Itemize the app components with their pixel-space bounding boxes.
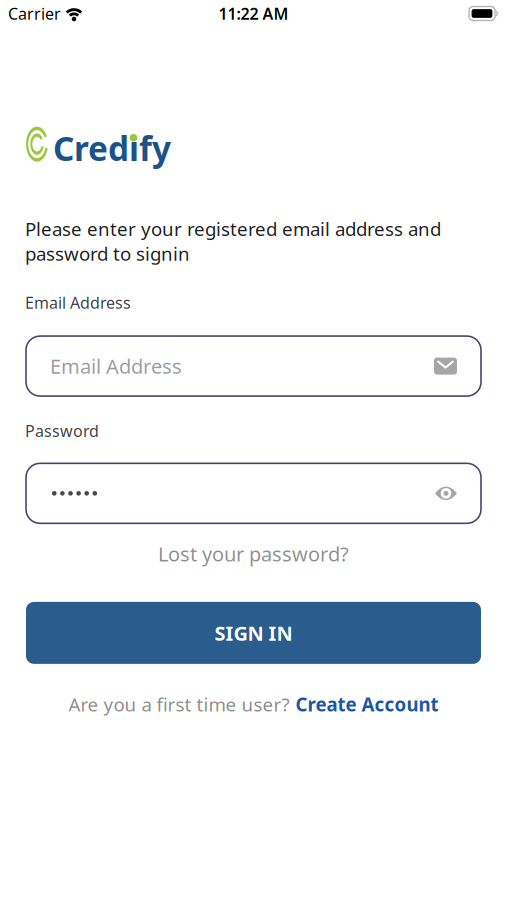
staticText: Create Account	[295, 692, 438, 717]
staticText: password to signin	[25, 241, 190, 266]
staticText: Are you a first time user?	[68, 692, 289, 717]
staticText: 11:22 AM	[218, 3, 288, 24]
staticText: Email Address	[50, 353, 182, 379]
staticText: Credify	[53, 126, 171, 170]
staticText: Carrier	[8, 3, 61, 24]
button[interactable]: Email Address	[26, 336, 481, 396]
staticText: Password	[25, 420, 99, 441]
staticText: Please enter your registered email addre…	[25, 216, 441, 241]
staticText: Email Address	[25, 292, 131, 313]
button[interactable]: Create Account	[295, 692, 438, 717]
button[interactable]: Password	[26, 463, 481, 523]
button[interactable]: SIGN IN	[26, 602, 481, 664]
button[interactable]: Show password	[435, 485, 457, 501]
staticText: Lost your password?	[158, 540, 349, 567]
staticText: SIGN IN	[214, 620, 292, 646]
button[interactable]: Lost your password?	[0, 540, 507, 567]
